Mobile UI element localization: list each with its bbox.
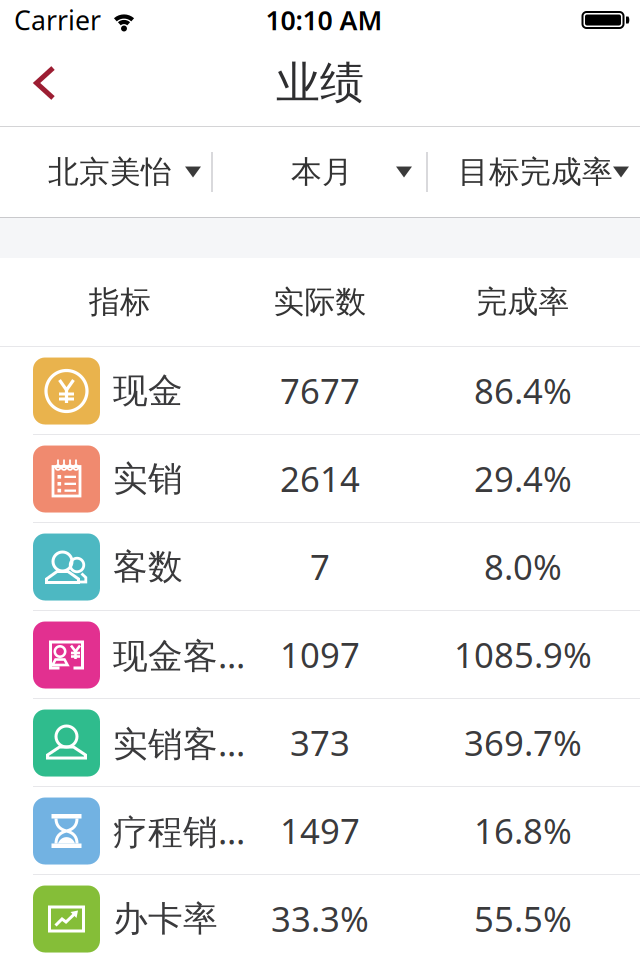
staticText: 业绩 bbox=[276, 56, 364, 110]
button[interactable]: 现金 bbox=[0, 347, 640, 435]
staticText: Carrier bbox=[14, 2, 101, 38]
staticText: 目标完成率 bbox=[458, 153, 613, 191]
button[interactable]: 本月 bbox=[213, 127, 426, 217]
staticText: 客数 bbox=[113, 546, 183, 588]
staticText: 本月 bbox=[291, 153, 353, 191]
staticText: 实际数 bbox=[273, 283, 366, 321]
staticText: 373 bbox=[290, 719, 350, 765]
button[interactable]: 实销 bbox=[0, 435, 640, 523]
staticText: 实销客... bbox=[113, 720, 245, 766]
staticText: 29.4% bbox=[474, 455, 572, 501]
staticText: 现金客... bbox=[113, 632, 245, 678]
staticText: 16.8% bbox=[474, 807, 572, 853]
staticText: 疗程销... bbox=[113, 808, 245, 854]
button[interactable]: 实销客... bbox=[0, 699, 640, 787]
staticText: 指标 bbox=[89, 283, 151, 321]
button[interactable]: 办卡率 bbox=[0, 875, 640, 960]
staticText: 7 bbox=[310, 543, 330, 589]
button[interactable]: 现金客... bbox=[0, 611, 640, 699]
staticText: 现金 bbox=[113, 370, 183, 412]
staticText: 2614 bbox=[280, 455, 360, 501]
button[interactable]: 北京美怡 bbox=[0, 127, 211, 217]
button[interactable]: 客数 bbox=[0, 523, 640, 611]
staticText: 实销 bbox=[113, 458, 183, 500]
staticText: 86.4% bbox=[474, 367, 572, 413]
staticText: 办卡率 bbox=[113, 898, 218, 940]
staticText: 10:10 AM bbox=[265, 2, 382, 38]
staticText: 7677 bbox=[280, 367, 360, 413]
staticText: 33.3% bbox=[271, 895, 369, 941]
staticText: 1085.9% bbox=[454, 631, 592, 677]
staticText: 55.5% bbox=[474, 895, 572, 941]
button[interactable]: 目标完成率 bbox=[428, 127, 640, 217]
button[interactable]: 疗程销... bbox=[0, 787, 640, 875]
staticText: 北京美怡 bbox=[48, 153, 172, 191]
button[interactable]: Back bbox=[0, 51, 79, 114]
staticText: 1497 bbox=[280, 807, 360, 853]
staticText: 8.0% bbox=[484, 543, 562, 589]
staticText: 369.7% bbox=[464, 719, 582, 765]
staticText: 完成率 bbox=[476, 283, 569, 321]
staticText: 1097 bbox=[280, 631, 360, 677]
